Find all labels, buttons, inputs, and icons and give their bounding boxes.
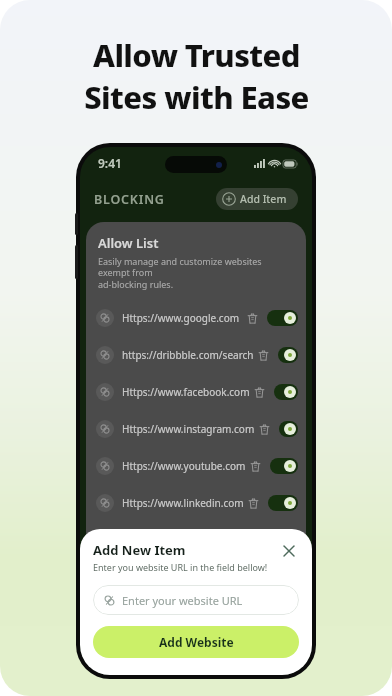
- button[interactable]: Toggle site: [279, 532, 298, 548]
- staticText: Enter your website URL: [122, 593, 243, 608]
- button[interactable]: Delete: [243, 568, 261, 586]
- button[interactable]: Delete: [255, 420, 273, 438]
- staticText: Https://www.google.com: [122, 311, 240, 325]
- button[interactable]: Close: [279, 541, 299, 561]
- button[interactable]: Delete: [244, 494, 262, 512]
- staticText: Https://www.clubhouse.com: [122, 533, 255, 547]
- button[interactable]: Enter your website URL: [93, 585, 299, 615]
- staticText: Allow Trusted: [93, 34, 300, 76]
- button[interactable]: Delete: [250, 383, 268, 401]
- button[interactable]: Https://www.youtube.com: [86, 447, 306, 484]
- button[interactable]: Toggle site: [274, 384, 298, 400]
- button[interactable]: Toggle site: [278, 347, 298, 363]
- button[interactable]: Https://www.linkedin.com: [86, 484, 306, 521]
- staticText: Sites with Ease: [84, 76, 309, 118]
- staticText: Https://www.facebook.com: [122, 385, 250, 399]
- button[interactable]: Https://www.twitter.com: [86, 558, 306, 595]
- button[interactable]: Add Website: [93, 626, 299, 658]
- button[interactable]: Https://www.instagram.com: [86, 410, 306, 447]
- staticText: Easily manage and customize websites exe…: [98, 255, 294, 291]
- button[interactable]: Toggle site: [270, 458, 298, 474]
- staticText: 9:41: [98, 155, 122, 171]
- staticText: Https://www.youtube.com: [122, 459, 246, 473]
- button[interactable]: Toggle site: [279, 421, 298, 437]
- button[interactable]: Delete: [246, 457, 264, 475]
- button[interactable]: Delete: [254, 346, 272, 364]
- staticText: https://dribbble.com/search: [122, 348, 254, 362]
- button[interactable]: Https://www.facebook.com: [86, 373, 306, 410]
- staticText: Https://www.instagram.com: [122, 422, 255, 436]
- button[interactable]: https://dribbble.com/search: [86, 336, 306, 373]
- button[interactable]: Toggle site: [267, 310, 298, 326]
- staticText: Allow List: [98, 234, 159, 252]
- button[interactable]: Https://www.clubhouse.com: [86, 521, 306, 558]
- staticText: Https://www.linkedin.com: [122, 496, 244, 510]
- button[interactable]: Add Item: [216, 188, 298, 210]
- staticText: Add Website: [159, 634, 234, 650]
- staticText: BLOCKING: [94, 191, 165, 208]
- button[interactable]: Https://www.google.com: [86, 299, 306, 336]
- staticText: Enter you website URL in the field bello…: [93, 561, 268, 573]
- staticText: Add Item: [240, 192, 287, 206]
- button[interactable]: Toggle site: [268, 495, 298, 511]
- button[interactable]: Delete: [243, 309, 261, 327]
- staticText: Add New Item: [93, 541, 186, 559]
- staticText: Https://www.twitter.com: [122, 570, 236, 584]
